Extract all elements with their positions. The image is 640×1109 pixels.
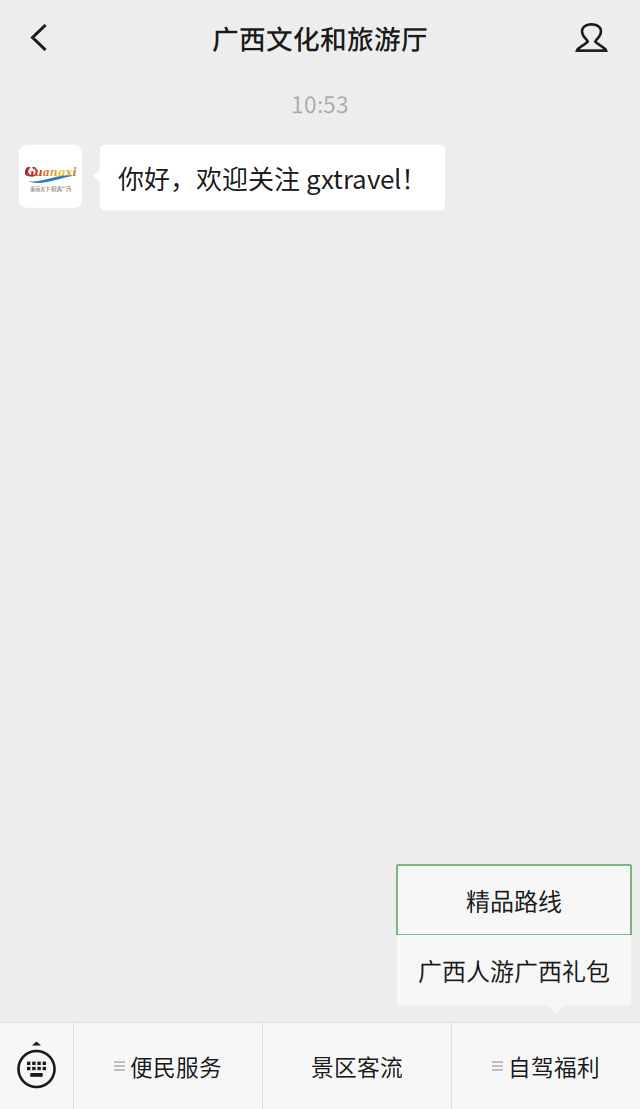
staticText: n (49, 165, 57, 179)
staticText: u (34, 165, 42, 179)
staticText: 广西人游广西礼包 (418, 953, 610, 987)
button[interactable]: 景区客流 (263, 1023, 451, 1109)
staticText: 广西文化和旅游厅 (212, 18, 428, 57)
staticText: 景区客流 (311, 1050, 403, 1082)
button[interactable]: Account (576, 21, 607, 55)
staticText: x (65, 165, 72, 179)
button[interactable]: 自驾福利 (452, 1023, 640, 1109)
staticText: a (42, 165, 49, 179)
staticText: i (72, 165, 76, 179)
button[interactable]: 便民服务 (74, 1023, 262, 1109)
staticText: 自驾福利 (508, 1050, 600, 1082)
staticText: 便民服务 (130, 1050, 222, 1082)
staticText: 你好，欢迎关注 gxtravel！ (118, 159, 427, 196)
staticText: 10:53 (291, 87, 349, 120)
button[interactable]: 广西人游广西礼包 (397, 935, 631, 1005)
button[interactable]: Back (15, 13, 63, 62)
staticText: 美丽天下 相遇广西 (30, 185, 71, 193)
staticText: g (57, 165, 65, 179)
button[interactable]: Keyboard (0, 1023, 73, 1109)
staticText: 精品路线 (466, 883, 562, 917)
button[interactable]: 精品路线 (397, 865, 631, 935)
staticText: G (24, 165, 34, 179)
